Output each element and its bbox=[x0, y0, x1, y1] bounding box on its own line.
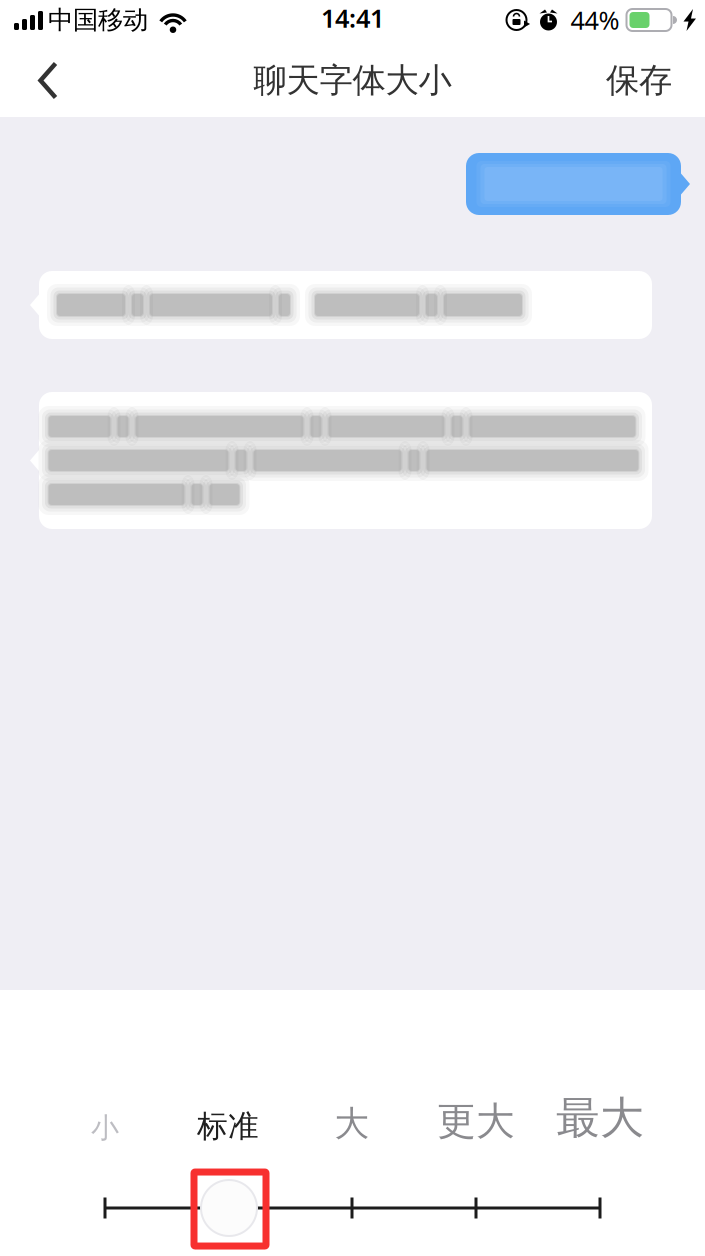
button[interactable]: 大 bbox=[267, 1083, 437, 1145]
button[interactable]: 更大 bbox=[391, 1083, 561, 1145]
button[interactable]: 保存 bbox=[587, 44, 691, 117]
button[interactable]: 小 bbox=[20, 1083, 190, 1145]
staticText: 14:41 bbox=[321, 1, 384, 35]
staticText: 保存 bbox=[606, 60, 672, 101]
staticText: 小 bbox=[91, 1111, 119, 1145]
staticText: 中国移动 bbox=[48, 4, 148, 35]
staticText: 最大 bbox=[556, 1091, 644, 1145]
staticText: 更大 bbox=[437, 1097, 515, 1145]
button[interactable]: 最大 bbox=[515, 1083, 685, 1145]
button[interactable]: 标准 bbox=[143, 1083, 313, 1145]
staticText: 标准 bbox=[197, 1107, 259, 1145]
staticText: 44% bbox=[570, 3, 619, 37]
staticText: 大 bbox=[334, 1102, 369, 1145]
button[interactable]: Back bbox=[12, 44, 84, 117]
staticText: 聊天字体大小 bbox=[253, 60, 451, 101]
button[interactable]: Font size bbox=[199, 1178, 259, 1238]
